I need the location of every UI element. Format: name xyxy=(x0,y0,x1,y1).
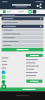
button[interactable]: More apps xyxy=(33,10,36,14)
button[interactable]: Submit request xyxy=(1,48,43,51)
button[interactable]: Share xyxy=(36,3,42,9)
button[interactable]: WhatsApp xyxy=(2,75,5,79)
button[interactable]: Open WhatsApp chat xyxy=(1,84,6,89)
button[interactable]: Telegram xyxy=(2,70,5,74)
button[interactable]: Contact us xyxy=(26,80,42,83)
button[interactable]: Messenger xyxy=(2,80,5,84)
button[interactable]: WhatsApp xyxy=(28,10,32,14)
button[interactable]: Book now xyxy=(26,54,43,57)
button[interactable]: Chat with us on WhatsApp xyxy=(0,87,45,91)
button[interactable]: Choose service xyxy=(1,17,43,20)
button[interactable]: Site icon xyxy=(3,10,6,13)
button[interactable]: Choose date xyxy=(1,25,43,28)
